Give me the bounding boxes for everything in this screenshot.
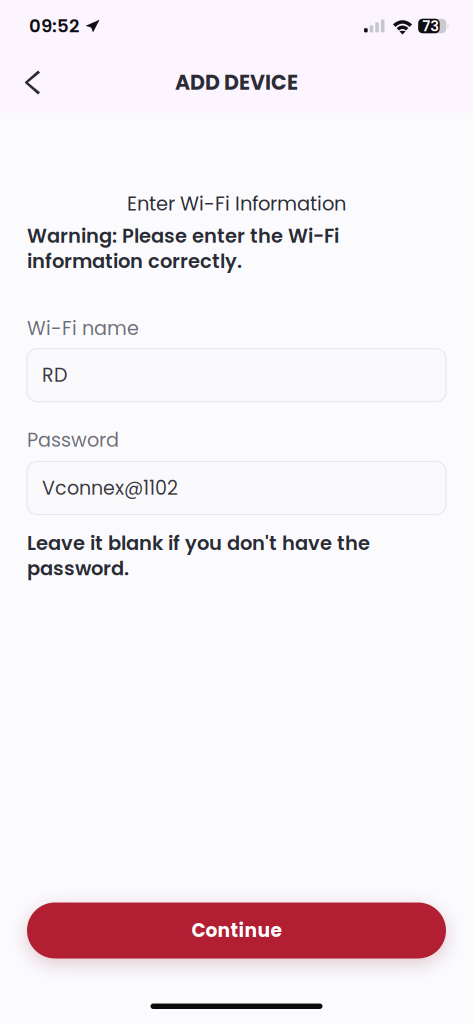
staticText: Password	[27, 427, 119, 453]
button[interactable]: RD	[27, 349, 446, 402]
button[interactable]: Vconnex@1102	[27, 461, 446, 514]
staticText: Vconnex@1102	[42, 475, 178, 501]
staticText: Enter Wi-Fi Information	[127, 190, 346, 217]
staticText: Continue	[191, 917, 281, 943]
staticText: RD	[42, 362, 67, 388]
staticText: Wi-Fi name	[27, 315, 139, 342]
staticText: Warning: Please enter the Wi-Fi informat…	[27, 222, 339, 275]
button[interactable]: Continue	[27, 902, 446, 958]
staticText: 73	[422, 16, 439, 36]
staticText: ADD DEVICE	[175, 68, 298, 97]
button[interactable]: Back	[11, 60, 55, 104]
staticText: 09:52	[29, 13, 79, 39]
staticText: Leave it blank if you don't have the pas…	[27, 529, 370, 582]
